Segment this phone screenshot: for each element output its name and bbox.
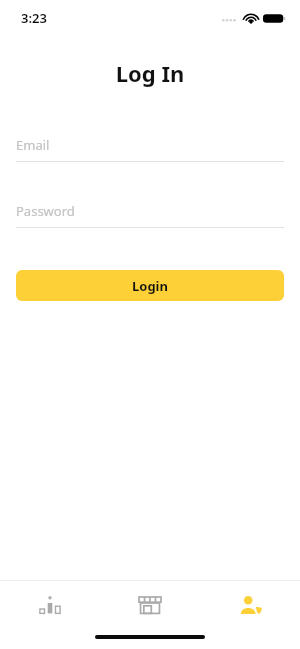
staticText: Login bbox=[132, 277, 168, 295]
button[interactable]: Email bbox=[16, 136, 284, 162]
button[interactable]: Password bbox=[16, 202, 284, 228]
staticText: Password bbox=[16, 202, 75, 220]
button[interactable]: Login bbox=[16, 270, 284, 301]
staticText: Email bbox=[16, 136, 50, 154]
button[interactable]: Store bbox=[100, 581, 200, 628]
staticText: Log In bbox=[0, 58, 300, 88]
button[interactable]: Statistics bbox=[0, 581, 100, 628]
button[interactable]: Profile bbox=[200, 581, 300, 628]
staticText: 3:23 bbox=[21, 9, 47, 27]
